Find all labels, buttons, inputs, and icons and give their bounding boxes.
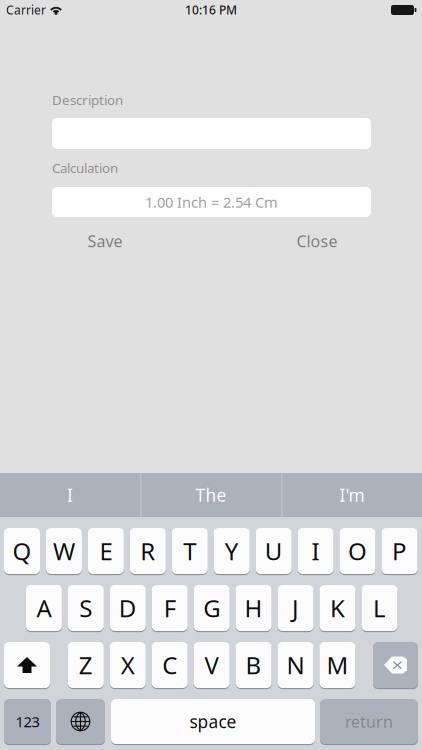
button[interactable]: W [46, 528, 82, 574]
button[interactable]: A [26, 585, 62, 631]
button[interactable]: O [339, 528, 375, 574]
staticText: E [99, 535, 112, 567]
staticText: 10:16 PM [185, 2, 237, 18]
staticText: P [392, 535, 407, 567]
button[interactable]: U [256, 528, 292, 574]
staticText: O [348, 535, 367, 567]
button[interactable]: N [277, 642, 313, 688]
button[interactable]: Z [68, 642, 104, 688]
button[interactable]: 123 [4, 699, 51, 744]
staticText: Save [87, 230, 122, 252]
staticText: V [205, 649, 219, 681]
button[interactable]: D [110, 585, 146, 631]
button[interactable]: 1.00 Inch = 2.54 Cm [52, 187, 371, 217]
button[interactable]: Shift [4, 642, 50, 688]
button[interactable]: G [194, 585, 230, 631]
staticText: K [330, 592, 345, 624]
staticText: X [121, 649, 135, 681]
button[interactable]: K [319, 585, 355, 631]
button[interactable]: Next keyboard [56, 699, 105, 744]
staticText: 123 [15, 712, 39, 731]
button[interactable]: X [110, 642, 146, 688]
staticText: Z [79, 649, 93, 681]
staticText: The [195, 483, 226, 506]
button[interactable]: I'm [282, 473, 422, 517]
button[interactable]: return [320, 699, 418, 744]
staticText: T [183, 535, 196, 567]
staticText: G [203, 592, 220, 624]
button[interactable]: T [172, 528, 208, 574]
staticText: D [119, 592, 137, 624]
button[interactable]: The [141, 473, 281, 517]
staticText: Description [52, 91, 123, 109]
staticText: N [286, 649, 304, 681]
button[interactable]: M [319, 642, 355, 688]
staticText: L [373, 592, 386, 624]
button[interactable]: S [68, 585, 104, 631]
button[interactable]: Save [80, 228, 130, 254]
button[interactable]: I [298, 528, 334, 574]
staticText: Carrier [6, 2, 46, 18]
staticText: Q [12, 535, 31, 567]
button[interactable]: Y [214, 528, 250, 574]
button[interactable]: R [130, 528, 166, 574]
staticText: 1.00 Inch = 2.54 Cm [145, 192, 278, 212]
staticText: I [312, 535, 320, 567]
button[interactable]: F [152, 585, 188, 631]
staticText: M [326, 649, 348, 681]
button[interactable]: space [111, 699, 315, 744]
staticText: A [36, 592, 51, 624]
staticText: S [79, 592, 92, 624]
button[interactable]: C [152, 642, 188, 688]
button[interactable]: L [361, 585, 397, 631]
staticText: I [67, 483, 73, 506]
staticText: B [246, 649, 262, 681]
staticText: F [164, 592, 176, 624]
button[interactable]: V [194, 642, 230, 688]
button[interactable]: Close [290, 228, 344, 254]
staticText: Calculation [52, 159, 118, 177]
button[interactable]: Delete [373, 642, 418, 688]
staticText: Close [296, 230, 337, 252]
button[interactable]: E [88, 528, 124, 574]
staticText: Y [225, 535, 239, 567]
staticText: U [265, 535, 283, 567]
staticText: J [292, 592, 299, 624]
button[interactable]: J [277, 585, 313, 631]
staticText: space [189, 710, 236, 733]
staticText: I'm [339, 483, 364, 506]
staticText: C [162, 649, 177, 681]
button[interactable]: H [236, 585, 272, 631]
staticText: R [140, 535, 155, 567]
button[interactable]: B [236, 642, 272, 688]
staticText: W [53, 535, 75, 567]
button[interactable]: I [0, 473, 140, 517]
staticText: return [345, 711, 393, 732]
button[interactable]: P [381, 528, 417, 574]
button[interactable]: Q [4, 528, 40, 574]
staticText: H [245, 592, 263, 624]
